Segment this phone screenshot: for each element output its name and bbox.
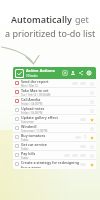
staticText: Send the report — [21, 79, 49, 84]
staticText: Pay bills — [21, 151, 36, 156]
staticText: Buy tomatoes — [21, 133, 46, 138]
button[interactable]: Star task — [89, 162, 94, 167]
button[interactable]: Call Amelia — [13, 97, 96, 105]
staticText: Tomorrow | 11:00 PM — [21, 129, 48, 132]
button[interactable]: Star task — [89, 90, 94, 95]
staticText: Today — [21, 138, 29, 141]
staticText: get — [75, 13, 89, 25]
button[interactable]: Update gallery effect — [13, 115, 96, 123]
button[interactable]: Create a strategy for redesigning focus … — [13, 160, 96, 168]
staticText: Update gallery effect — [21, 115, 58, 120]
staticText: Mon | Mar 12 — [21, 84, 38, 87]
button[interactable]: Add task — [61, 69, 69, 77]
button[interactable]: Windmill — [13, 124, 96, 132]
staticText: Friday | 04:00 PM — [21, 102, 43, 105]
button[interactable]: Pay bills — [13, 151, 96, 159]
button[interactable]: Star task — [89, 108, 94, 113]
button[interactable]: Upload notes — [13, 106, 96, 114]
button[interactable]: Star task — [89, 135, 94, 140]
staticText: Active Actions — [26, 68, 55, 74]
button[interactable]: Settings — [85, 69, 93, 77]
button[interactable]: Star task — [89, 153, 94, 158]
staticText: Automatically — [11, 13, 75, 25]
staticText: Today — [21, 156, 29, 159]
staticText: Friday | 05:00 PM — [21, 111, 43, 114]
button[interactable]: App icon — [15, 69, 24, 78]
staticText: Tue | Feb 14 | 09:00 AM — [21, 93, 51, 96]
staticText: a prioritized to-do list — [5, 27, 96, 39]
button[interactable]: Star task — [89, 126, 94, 131]
button[interactable]: Assignee — [69, 69, 77, 77]
button[interactable]: Get car service — [13, 142, 96, 150]
staticText: Create a strategy for redesigning focus … — [21, 160, 79, 168]
staticText: Tomorrow — [21, 120, 34, 123]
staticText: Upload notes — [21, 106, 45, 111]
staticText: 10 tasks — [26, 74, 38, 78]
button[interactable]: Share — [77, 69, 85, 77]
button[interactable]: Send the report — [13, 79, 96, 87]
staticText: Windmill — [21, 124, 37, 129]
button[interactable]: Star task — [89, 144, 94, 149]
staticText: Take Max to vet — [21, 88, 49, 93]
staticText: Get car service — [21, 142, 47, 147]
button[interactable]: Star task — [89, 117, 94, 122]
button[interactable]: Star task — [89, 99, 94, 104]
button[interactable]: Star task — [89, 81, 94, 86]
button[interactable]: Buy tomatoes — [13, 133, 96, 141]
staticText: Call Amelia — [21, 97, 41, 102]
staticText: Today — [21, 147, 29, 150]
button[interactable]: Take Max to vet — [13, 88, 96, 96]
